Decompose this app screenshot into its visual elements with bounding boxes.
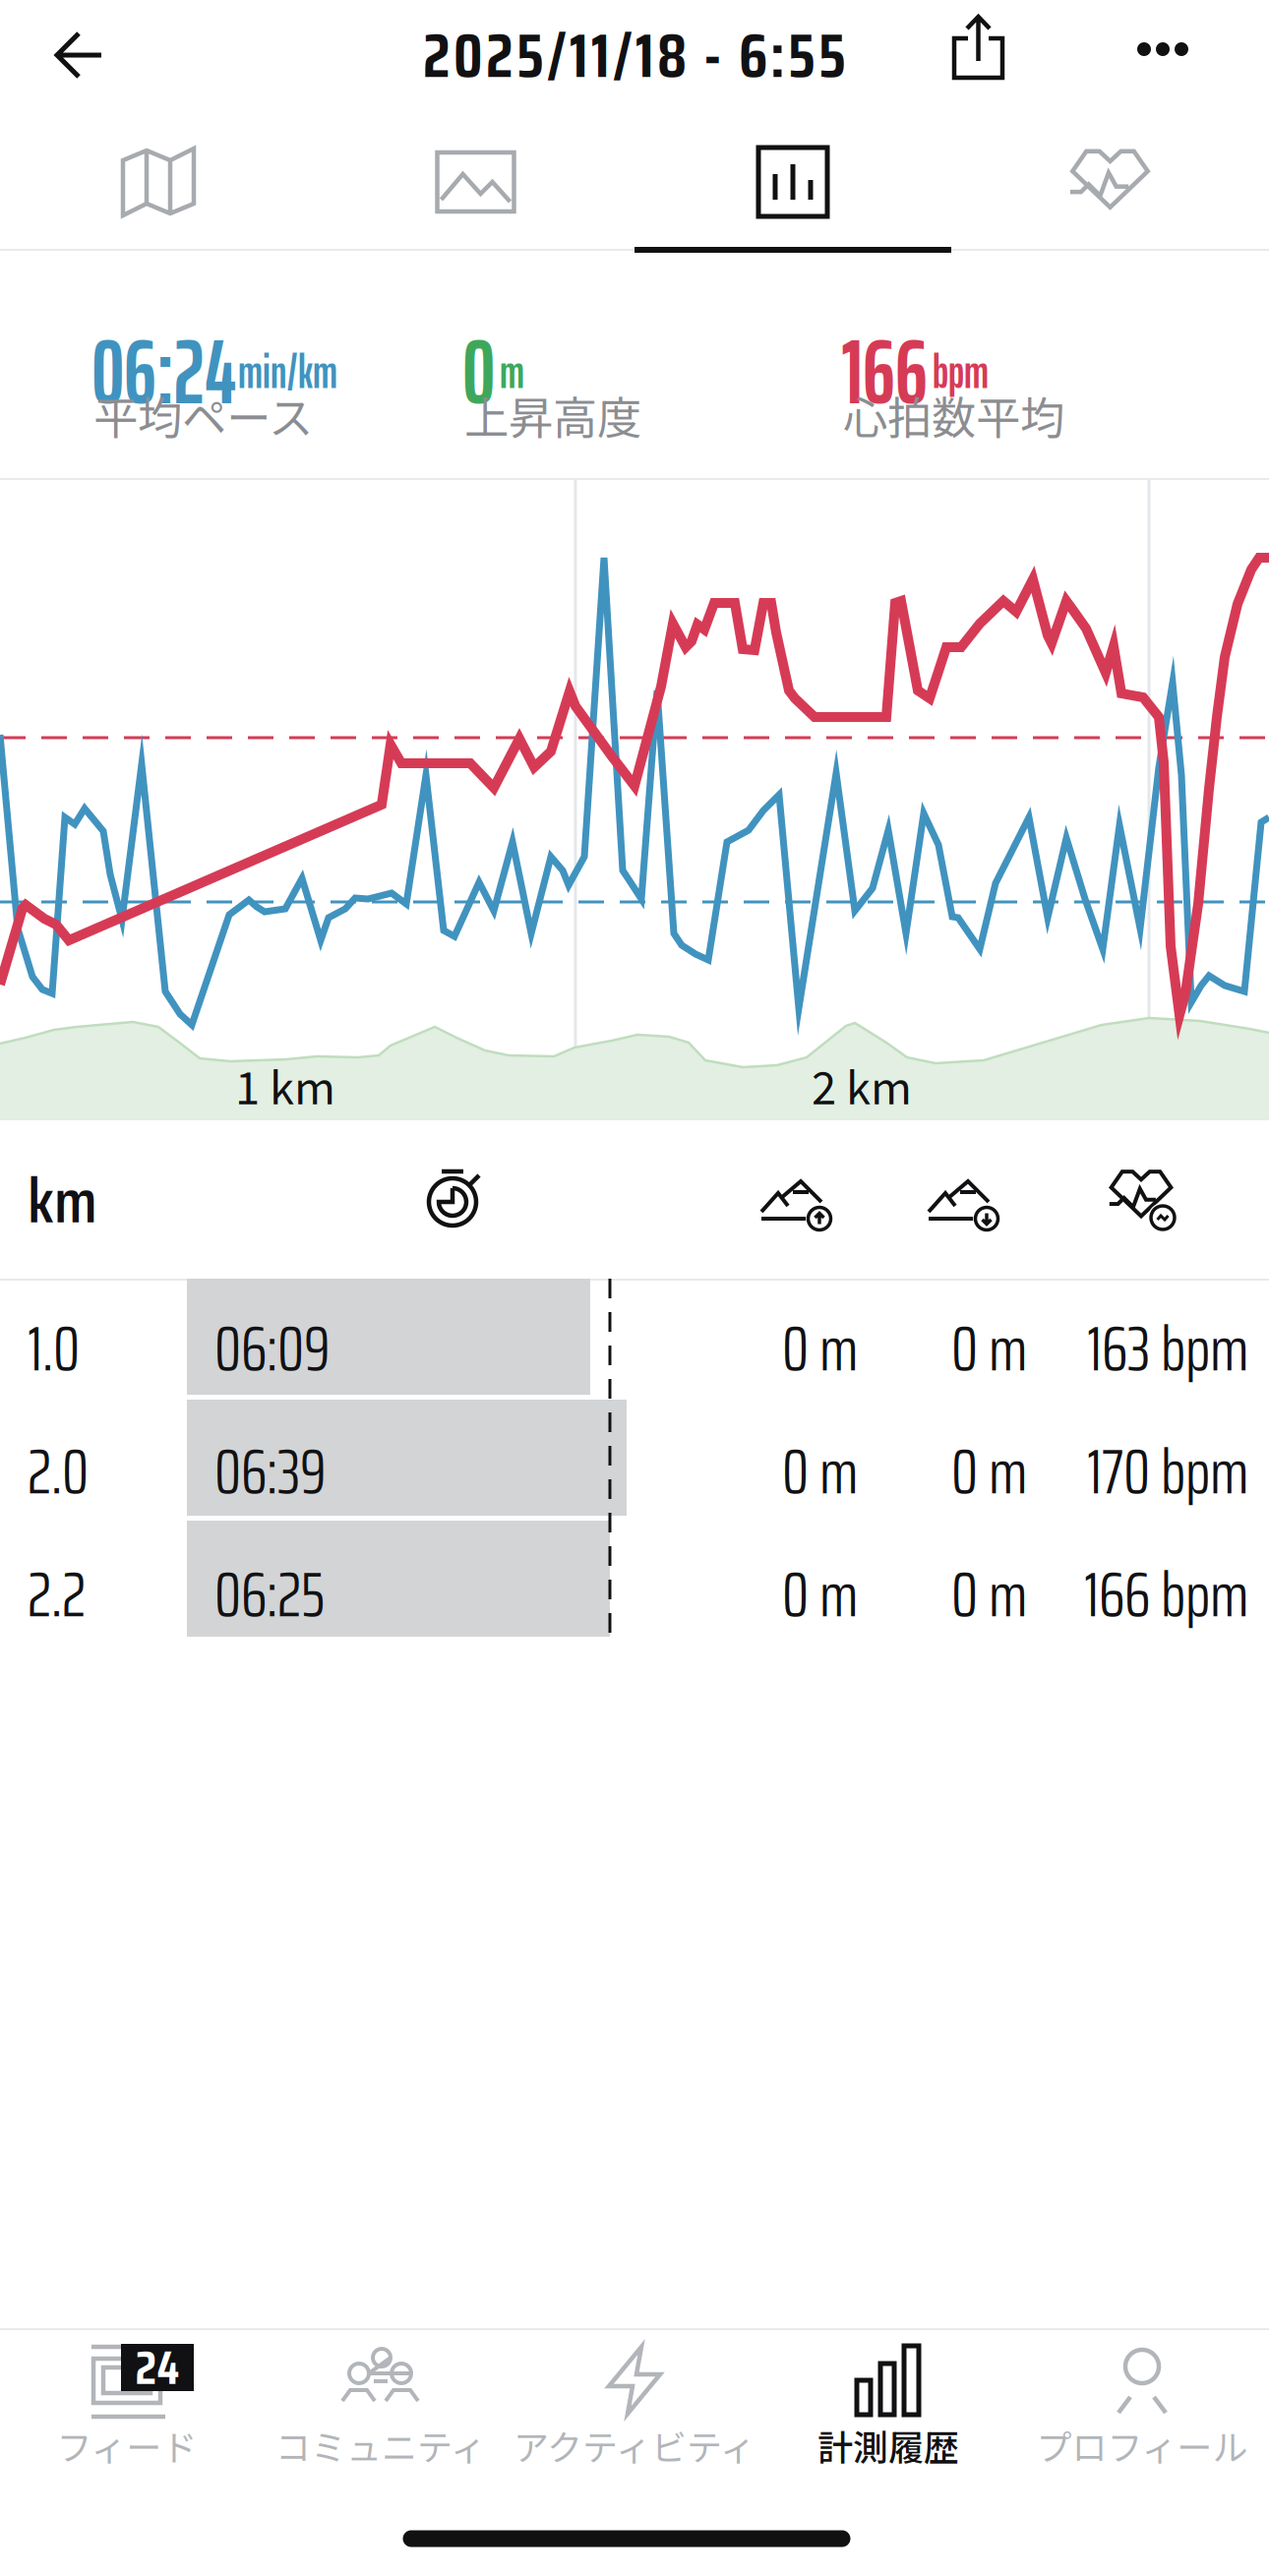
staticText: プロフィール (1036, 2420, 1248, 2471)
staticText: 2.0 (28, 1422, 89, 1521)
staticText: 0 m (782, 1299, 858, 1398)
staticText: 心拍数平均 (843, 383, 1064, 447)
staticText: 0 m (951, 1422, 1027, 1521)
staticText: アクティビティ (514, 2420, 755, 2471)
staticText: 163 bpm (1087, 1299, 1248, 1398)
button[interactable]: Back (35, 11, 123, 99)
staticText: 06:25 (214, 1545, 325, 1644)
staticText: 06:09 (214, 1299, 330, 1398)
button[interactable]: Share (939, 5, 1018, 93)
staticText: 0 m (951, 1299, 1027, 1398)
staticText: km (28, 1151, 97, 1250)
staticText: 0 m (782, 1545, 858, 1644)
button[interactable]: Activity (508, 2329, 761, 2486)
staticText: 計測履歴 (817, 2420, 959, 2471)
staticText: 0 m (782, 1422, 858, 1521)
button[interactable]: Map (0, 113, 317, 251)
staticText: 06:24 (91, 299, 236, 443)
staticText: 170 bpm (1087, 1422, 1248, 1521)
staticText: bpm (933, 334, 989, 409)
button[interactable]: Photos (317, 113, 634, 251)
button[interactable]: History (761, 2329, 1015, 2486)
staticText: 2 km (812, 1053, 912, 1117)
button[interactable]: Heart rate (952, 113, 1269, 251)
button[interactable]: Profile (1015, 2329, 1269, 2486)
staticText: 166 bpm (1084, 1545, 1248, 1644)
staticText: 1.0 (28, 1299, 80, 1398)
staticText: 2.2 (28, 1545, 86, 1644)
staticText: m (500, 334, 524, 409)
staticText: 1 km (235, 1053, 335, 1117)
staticText: フィード (57, 2420, 197, 2471)
staticText: 0 (462, 299, 495, 443)
staticText: min/km (238, 334, 337, 409)
button[interactable]: More (1123, 10, 1202, 89)
staticText: 24 (135, 2330, 180, 2405)
staticText: 0 m (951, 1545, 1027, 1644)
staticText: 2025/11/18 - 6:55 (423, 9, 846, 103)
staticText: 166 (841, 299, 928, 443)
staticText: 06:39 (214, 1422, 326, 1521)
button[interactable]: Feed (0, 2329, 254, 2486)
button[interactable]: Statistics (634, 113, 951, 251)
staticText: 上昇高度 (464, 383, 641, 447)
button[interactable]: Community (254, 2329, 508, 2486)
staticText: コミュニティ (275, 2420, 486, 2471)
staticText: 平均ペース (93, 383, 313, 447)
